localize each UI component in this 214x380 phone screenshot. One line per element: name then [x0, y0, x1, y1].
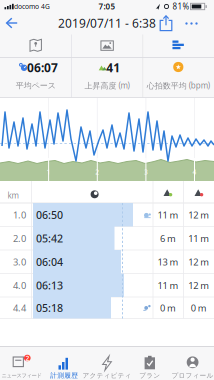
staticText: km	[7, 190, 18, 201]
button[interactable]: History	[43, 346, 86, 380]
button[interactable]: News feed	[0, 346, 43, 380]
staticText: 2.0	[13, 232, 26, 244]
staticText: 05:18	[36, 301, 63, 315]
staticText: 06:50	[36, 208, 63, 222]
staticText: 心拍数平均 (bpm)	[147, 80, 210, 91]
staticText: 13 m	[157, 256, 178, 268]
staticText: 0 m	[160, 302, 176, 314]
button[interactable]: Statistics	[143, 33, 214, 57]
staticText: 3	[144, 168, 148, 176]
staticText: 2	[95, 168, 99, 176]
staticText: 11 m	[157, 279, 178, 291]
staticText: 7:05	[98, 1, 115, 12]
staticText: プラン	[139, 371, 160, 380]
staticText: 計測履歴	[50, 371, 78, 380]
staticText: プロフィール	[172, 371, 214, 380]
staticText: 05:42	[36, 231, 63, 245]
button[interactable]: Profile	[171, 346, 214, 380]
staticText: 4.4	[13, 302, 26, 314]
staticText: 06:13	[36, 278, 63, 292]
button[interactable]: Photos	[71, 33, 143, 57]
staticText: 4	[192, 168, 196, 176]
staticText: 12 m	[188, 279, 209, 291]
staticText: 06:04	[36, 255, 63, 269]
staticText: 81%	[172, 1, 189, 12]
button[interactable]: Back	[3, 14, 23, 32]
staticText: ニュースフィード	[1, 372, 41, 379]
staticText: docomo	[14, 2, 39, 11]
staticText: 6 m	[160, 232, 176, 244]
button[interactable]: Map	[0, 33, 71, 57]
staticText: 平均ペース	[16, 81, 56, 90]
staticText: 2019/07/11 - 6:38	[58, 15, 156, 31]
staticText: 12 m	[188, 209, 209, 221]
staticText: 4.0	[13, 279, 26, 291]
button[interactable]: Share	[156, 13, 176, 33]
staticText: 1.0	[13, 209, 26, 221]
staticText: 3.0	[13, 256, 26, 268]
staticText: 12 m	[188, 256, 209, 268]
staticText: 06:07	[27, 59, 58, 75]
staticText: 11 m	[157, 209, 178, 221]
staticText: 11 m	[188, 232, 209, 244]
staticText: アクティビティ	[82, 371, 131, 380]
staticText: 0 m	[191, 302, 207, 314]
staticText: 4G	[41, 2, 50, 11]
staticText: 41	[106, 59, 120, 75]
staticText: 上昇高度 (m)	[84, 80, 129, 91]
button[interactable]: More	[182, 18, 200, 28]
button[interactable]: Plan	[128, 346, 171, 380]
staticText: 1	[47, 168, 51, 176]
staticText: 2	[25, 354, 29, 363]
button[interactable]: Activity	[86, 346, 128, 380]
